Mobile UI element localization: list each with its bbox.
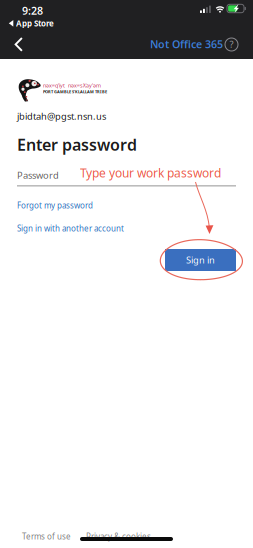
staticText: Forgot my password [17,200,93,211]
staticText: jbidtah@pgst.nsn.us [17,110,106,122]
staticText: App Store [16,18,54,29]
button[interactable]: Help [224,37,239,52]
staticText: Not Office 365 [150,37,223,51]
staticText: Type your work password [80,165,221,181]
staticText: Terms of use [22,531,71,542]
button[interactable]: Not Office 365 [150,36,222,52]
staticText: 9:28 [22,3,43,18]
staticText: PORT GAMBLE S'KLALLAM TRIBE [43,89,107,94]
staticText: Sign in with another account [17,223,124,234]
button[interactable]: Privacy & cookies [86,531,150,542]
button[interactable]: Sign in with another account [17,222,162,235]
button[interactable]: Terms of use [22,531,72,542]
staticText: ? [229,38,233,50]
staticText: Password [17,169,59,181]
button[interactable]: Back [4,30,34,59]
staticText: Privacy & cookies [86,531,151,542]
staticText: ... [156,531,162,542]
staticText: Sign in [186,254,215,266]
staticText: Enter password [17,134,137,155]
button[interactable]: Forgot my password [17,199,137,212]
staticText: nəxʷqʼiyt nəxʷsƛ̕ayʼəm [43,82,101,89]
button[interactable]: Sign in [165,249,236,271]
